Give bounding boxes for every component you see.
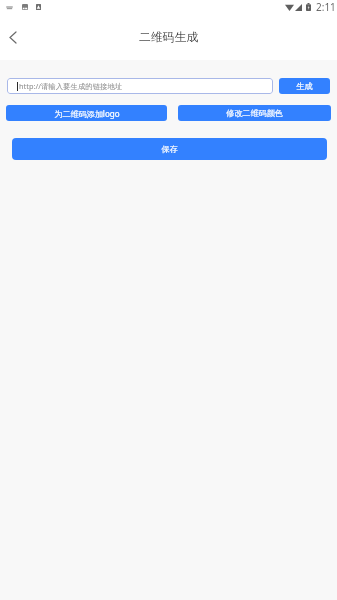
button[interactable]: Back [0,24,26,50]
button[interactable]: 保存 [12,138,327,160]
staticText: 保存 [161,144,178,154]
staticText: 2:11 [316,0,336,14]
staticText: 生成 [296,81,313,91]
button[interactable]: 为二维码添加logo [6,105,167,121]
staticText: 修改二维码颜色 [226,108,283,118]
staticText: 为二维码添加logo [54,108,120,119]
button[interactable]: 修改二维码颜色 [178,105,331,121]
staticText: http://请输入要生成的链接地址 [19,81,123,91]
staticText: 二维码生成 [139,30,198,45]
button[interactable]: 生成 [279,78,330,94]
button[interactable]: http://请输入要生成的链接地址 [7,78,273,94]
